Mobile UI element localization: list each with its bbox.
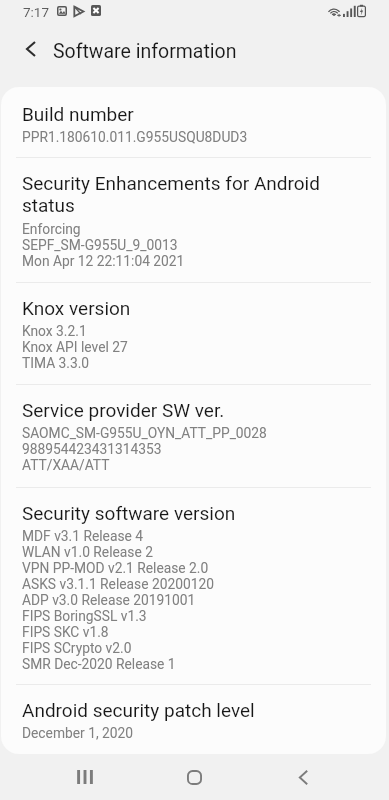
staticText: SMR Dec-2020 Release 1	[22, 656, 176, 672]
staticText: ADP v3.0 Release 20191001	[22, 592, 196, 608]
staticText: Security Enhancements for Android status	[22, 172, 368, 217]
staticText: December 1, 2020	[22, 725, 134, 741]
staticText: 988954423431314353	[22, 441, 162, 457]
staticText: Android security patch level	[22, 699, 255, 721]
staticText: SAOMC_SM-G955U_OYN_ATT_PP_0028	[22, 425, 267, 441]
staticText: Knox API level 27	[22, 339, 128, 355]
staticText: TIMA 3.3.0	[22, 355, 90, 371]
staticText: Enforcing	[22, 221, 81, 237]
staticText: Service provider SW ver.	[22, 399, 225, 421]
staticText: Build number	[22, 103, 134, 125]
staticText: WLAN v1.0 Release 2	[22, 544, 153, 560]
staticText: Security software version	[22, 502, 236, 524]
staticText: 7:17	[23, 4, 50, 20]
button[interactable]: Service provider SW ver.	[1, 385, 386, 488]
staticText: Mon Apr 12 22:11:04 2021	[22, 253, 185, 269]
staticText: ASKS v3.1.1 Release 20200120	[22, 576, 214, 592]
staticText: Software information	[53, 40, 237, 63]
staticText: FIPS SKC v1.8	[22, 624, 109, 640]
staticText: SEPF_SM-G955U_9_0013	[22, 237, 178, 253]
staticText: PPR1.180610.011.G955USQU8DUD3	[22, 129, 248, 145]
button[interactable]: Android security patch level	[1, 685, 386, 754]
button[interactable]: Security software version	[1, 488, 386, 685]
button[interactable]: Home	[172, 761, 216, 793]
button[interactable]: Back	[281, 761, 325, 793]
staticText: FIPS SCrypto v2.0	[22, 640, 132, 656]
button[interactable]: Knox version	[1, 283, 386, 385]
staticText: FIPS BoringSSL v1.3	[22, 608, 147, 624]
staticText: ATT/XAA/ATT	[22, 457, 110, 473]
button[interactable]: Security Enhancements for Android status	[1, 158, 386, 283]
button[interactable]: Build number	[1, 87, 386, 158]
button[interactable]: Back	[13, 31, 49, 67]
staticText: VPN PP-MOD v2.1 Release 2.0	[22, 560, 209, 576]
staticText: Knox 3.2.1	[22, 323, 87, 339]
button[interactable]: Recent apps	[63, 761, 107, 793]
staticText: Knox version	[22, 297, 131, 319]
staticText: MDF v3.1 Release 4	[22, 528, 144, 544]
